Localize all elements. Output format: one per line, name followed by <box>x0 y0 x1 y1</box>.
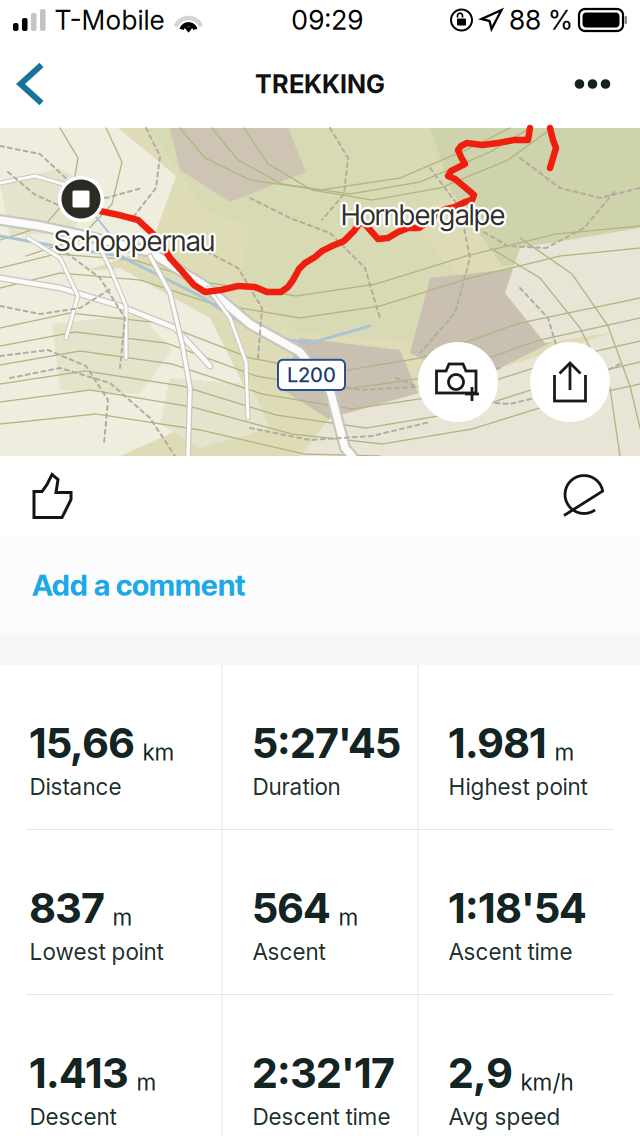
button[interactable]: Share <box>498 342 610 422</box>
staticText: Schoppernau <box>52 224 213 258</box>
staticText: 1.413 <box>29 1048 128 1098</box>
staticText: m <box>554 739 574 766</box>
staticText: Hornbergalpe <box>341 200 505 234</box>
staticText: km/h <box>520 1069 573 1096</box>
staticText: m <box>136 1069 156 1096</box>
button[interactable]: Like <box>0 456 100 536</box>
staticText: Lowest point <box>29 938 163 965</box>
staticText: Schoppernau <box>56 222 217 256</box>
button[interactable]: Add photo <box>418 342 498 422</box>
staticText: Schoppernau <box>54 226 215 260</box>
button[interactable]: Comment <box>532 456 640 536</box>
staticText: Ascent <box>252 938 325 965</box>
button[interactable]: More options <box>554 43 640 125</box>
staticText: T-Mobile <box>54 4 164 36</box>
staticText: 5:27'45 <box>252 718 400 768</box>
staticText: Schoppernau <box>56 226 217 260</box>
staticText: Hornbergalpe <box>339 200 503 234</box>
staticText: Hornbergalpe <box>343 196 507 230</box>
staticText: 15,66 <box>29 718 134 768</box>
staticText: Hornbergalpe <box>343 200 507 234</box>
staticText: Schoppernau <box>52 222 213 256</box>
staticText: Ascent time <box>448 938 572 965</box>
staticText: 2,9 <box>448 1048 512 1098</box>
staticText: Descent time <box>252 1103 390 1130</box>
button[interactable]: Add a comment <box>0 537 640 633</box>
button[interactable]: Back <box>0 43 68 124</box>
staticText: 1.981 <box>448 718 546 768</box>
staticText: Hornbergalpe <box>339 198 503 232</box>
staticText: Duration <box>252 773 340 800</box>
staticText: m <box>338 904 358 931</box>
staticText: 2:32'17 <box>252 1048 394 1098</box>
staticText: Highest point <box>448 773 587 800</box>
staticText: 88 % <box>509 4 573 36</box>
staticText: Hornbergalpe <box>343 198 507 232</box>
staticText: Schoppernau <box>52 226 213 260</box>
staticText: Schoppernau <box>54 222 215 255</box>
staticText: Descent <box>29 1103 116 1130</box>
staticText: 1:18'54 <box>448 883 586 933</box>
staticText: Add a comment <box>32 567 245 603</box>
staticText: Distance <box>29 773 121 800</box>
staticText: Schoppernau <box>54 224 215 258</box>
staticText: Hornbergalpe <box>339 196 503 230</box>
staticText: 837 <box>29 883 104 933</box>
staticText: TREKKING <box>255 69 385 99</box>
staticText: Schoppernau <box>56 224 217 258</box>
staticText: m <box>112 904 132 931</box>
staticText: Hornbergalpe <box>341 198 505 232</box>
staticText: 09:29 <box>291 4 363 36</box>
staticText: L200 <box>287 363 336 387</box>
staticText: Avg speed <box>448 1103 560 1130</box>
staticText: Hornbergalpe <box>341 196 505 229</box>
staticText: km <box>142 739 174 766</box>
staticText: 564 <box>252 883 330 933</box>
